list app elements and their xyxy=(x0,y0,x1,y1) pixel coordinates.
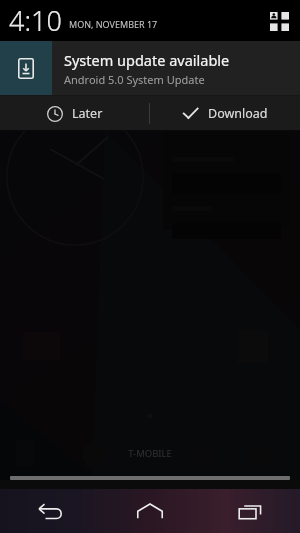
button[interactable]: Home xyxy=(100,489,200,533)
staticText: MON, NOVEMBER 17 xyxy=(69,18,158,30)
button[interactable]: Back xyxy=(0,489,100,533)
button[interactable]: Recent apps xyxy=(200,489,300,533)
staticText: T-MOBILE xyxy=(0,447,300,460)
staticText: 4:10 xyxy=(9,2,62,39)
button[interactable]: Later xyxy=(0,96,149,131)
staticText: System update available xyxy=(64,50,230,70)
button[interactable]: Download xyxy=(150,96,300,131)
staticText: Android 5.0 System Update xyxy=(64,72,205,87)
staticText: Later xyxy=(72,105,103,122)
button[interactable]: Quick settings xyxy=(266,8,292,34)
staticText: Download xyxy=(208,105,268,122)
button[interactable]: System update available xyxy=(0,41,300,95)
